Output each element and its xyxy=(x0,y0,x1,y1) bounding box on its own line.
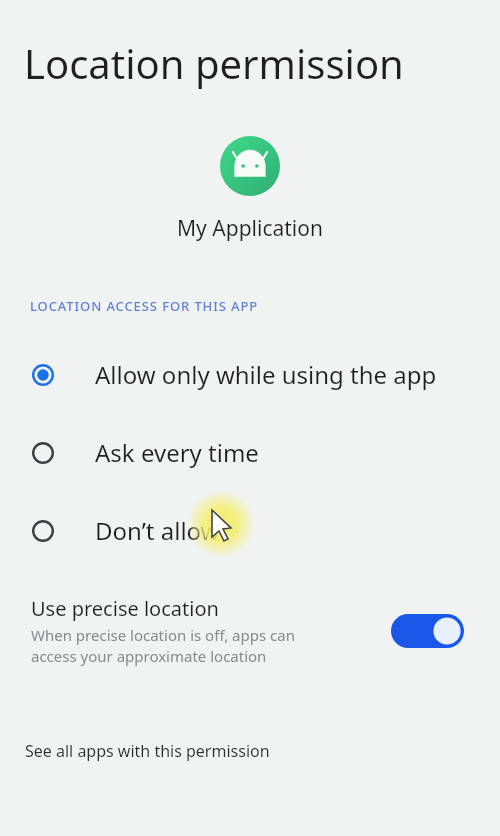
staticText: See all apps with this permission xyxy=(25,740,270,762)
staticText: Don’t allow xyxy=(95,514,220,547)
staticText: Location permission xyxy=(24,36,404,90)
staticText: Ask every time xyxy=(95,436,259,469)
button[interactable]: Allow only while using the app xyxy=(0,335,500,413)
staticText: When precise location is off, apps can a… xyxy=(31,625,295,667)
staticText: LOCATION ACCESS FOR THIS APP xyxy=(30,297,259,315)
button[interactable]: Ask every time xyxy=(0,413,500,491)
button[interactable]: Use precise location toggle xyxy=(391,614,464,648)
staticText: Allow only while using the app xyxy=(95,358,437,391)
staticText: Use precise location xyxy=(31,595,219,622)
staticText: My Application xyxy=(0,214,500,243)
button[interactable]: Don’t allow xyxy=(0,491,500,569)
button[interactable]: See all apps with this permission xyxy=(0,731,500,771)
button[interactable]: Use precise location xyxy=(0,593,500,669)
